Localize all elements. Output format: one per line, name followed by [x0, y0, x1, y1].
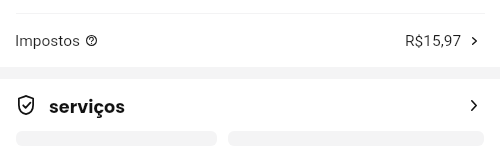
staticText: Impostos: [15, 32, 81, 50]
button[interactable]: serviços: [0, 79, 500, 131]
staticText: R$15,97: [405, 32, 462, 50]
other: Ajuda sobre impostos: [86, 35, 97, 46]
button[interactable]: Impostos: [0, 14, 500, 67]
staticText: serviços: [49, 95, 126, 120]
